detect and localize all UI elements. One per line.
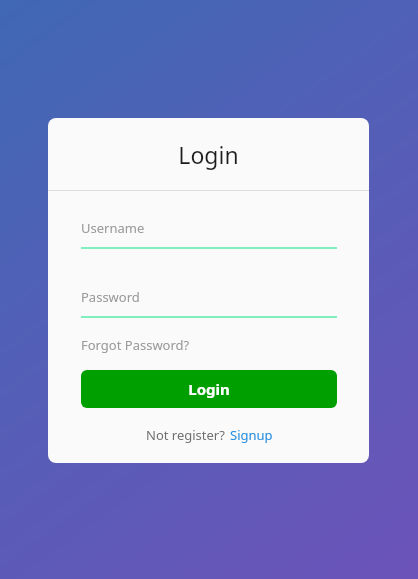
button[interactable]: Forgot Password? bbox=[81, 336, 190, 354]
staticText: Username bbox=[81, 219, 145, 237]
staticText: Not register? bbox=[146, 426, 225, 444]
button[interactable]: Login bbox=[81, 370, 337, 408]
staticText: Password bbox=[81, 288, 140, 306]
staticText: Login bbox=[178, 139, 239, 170]
staticText: Login bbox=[188, 379, 230, 399]
button[interactable]: Password bbox=[81, 288, 337, 318]
staticText: Forgot Password? bbox=[81, 336, 190, 354]
button[interactable]: Username bbox=[81, 219, 337, 249]
button[interactable]: Signup bbox=[230, 426, 273, 444]
staticText: Signup bbox=[230, 426, 273, 444]
